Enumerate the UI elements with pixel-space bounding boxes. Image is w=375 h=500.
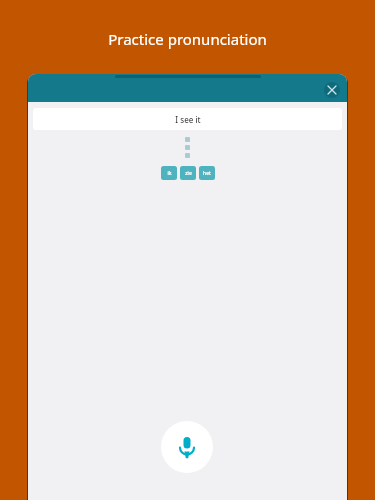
- button[interactable]: Close: [321, 79, 343, 101]
- button[interactable]: Record pronunciation: [161, 421, 213, 473]
- staticText: I see it: [175, 114, 201, 125]
- staticText: het: [203, 170, 211, 177]
- staticText: ik: [167, 170, 172, 177]
- button[interactable]: ik: [161, 166, 177, 180]
- button[interactable]: het: [199, 166, 215, 180]
- staticText: Practice pronunciation: [0, 29, 375, 49]
- button[interactable]: zie: [180, 166, 196, 180]
- staticText: zie: [185, 170, 192, 177]
- button[interactable]: I see it: [33, 108, 342, 130]
